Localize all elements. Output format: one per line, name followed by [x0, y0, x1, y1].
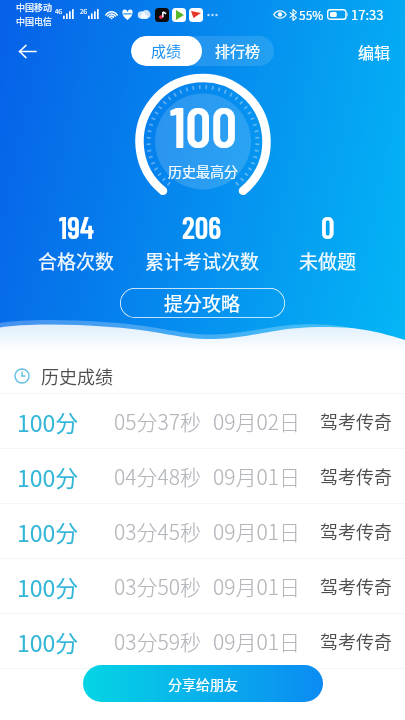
staticText: 55% [299, 6, 324, 23]
button[interactable]: Back [11, 35, 43, 67]
staticText: 中国电信 [16, 15, 53, 28]
staticText: 驾考传奇 [320, 408, 392, 434]
button[interactable]: 100分 [0, 394, 405, 449]
staticText: 100 [170, 91, 237, 159]
staticText: 206 [182, 209, 222, 245]
button[interactable]: 分享给朋友 [83, 665, 323, 702]
button[interactable]: 100分 [0, 559, 405, 614]
staticText: 未做题 [299, 247, 357, 275]
staticText: 03分45秒 [114, 516, 201, 546]
staticText: 中国移动 [16, 1, 53, 14]
button[interactable]: 成绩 [131, 36, 202, 66]
staticText: 03分59秒 [114, 626, 201, 656]
staticText: 04分48秒 [114, 461, 201, 491]
button[interactable]: 编辑 [355, 36, 394, 67]
staticText: 100分 [17, 405, 79, 438]
staticText: 05分37秒 [114, 406, 201, 436]
staticText: 4G [55, 7, 63, 16]
staticText: 17:33 [351, 5, 384, 24]
staticText: 累计考试次数 [145, 247, 260, 275]
button[interactable]: 排行榜 [202, 36, 274, 66]
staticText: 驾考传奇 [320, 463, 392, 489]
staticText: 编辑 [358, 40, 391, 63]
staticText: 成绩 [151, 40, 182, 62]
button[interactable]: 100分 [0, 449, 405, 504]
staticText: 03分50秒 [114, 571, 201, 601]
staticText: 驾考传奇 [320, 628, 392, 654]
staticText: 驾考传奇 [320, 518, 392, 544]
staticText: 09月01日 [213, 461, 300, 491]
staticText: 排行榜 [215, 40, 261, 62]
staticText: 100分 [17, 460, 79, 493]
staticText: 2G [80, 7, 88, 16]
button[interactable]: 提分攻略 [120, 288, 285, 318]
staticText: 历史成绩 [41, 363, 113, 389]
staticText: 09月01日 [213, 626, 300, 656]
staticText: 100分 [17, 625, 79, 658]
staticText: 合格次数 [38, 247, 115, 275]
staticText: 194 [59, 209, 94, 245]
staticText: 提分攻略 [164, 289, 241, 317]
button[interactable]: 100分 [0, 614, 405, 669]
staticText: 0 [321, 209, 335, 245]
staticText: 100分 [17, 515, 79, 548]
staticText: 100分 [17, 570, 79, 603]
button[interactable]: 100分 [0, 504, 405, 559]
staticText: 历史最高分 [168, 161, 238, 181]
staticText: 驾考传奇 [320, 573, 392, 599]
staticText: 分享给朋友 [168, 674, 238, 694]
staticText: 09月01日 [213, 571, 300, 601]
staticText: 09月02日 [213, 406, 300, 436]
staticText: 09月01日 [213, 516, 300, 546]
